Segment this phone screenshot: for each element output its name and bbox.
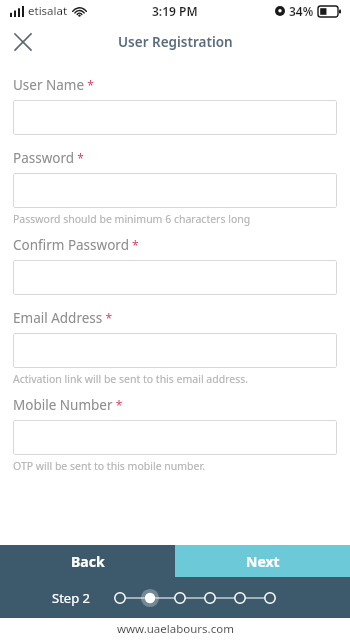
staticText: Back [71,552,105,571]
staticText: Password * [13,149,84,167]
button[interactable] [13,420,337,455]
staticText: 3:19 PM [152,3,198,19]
button[interactable]: Back [0,545,175,577]
staticText: www.uaelabours.com [117,621,234,637]
staticText: Activation link will be sent to this ema… [13,372,249,386]
staticText: Step 2 [52,589,90,607]
button[interactable] [13,333,337,368]
button[interactable] [13,100,337,135]
button[interactable]: Close [6,25,40,59]
staticText: 34% [289,3,314,19]
staticText: User Name * [13,76,94,94]
staticText: etisalat [28,3,68,19]
staticText: Email Address * [13,309,112,327]
staticText: Next [246,552,280,571]
button[interactable] [13,173,337,208]
staticText: OTP will be sent to this mobile number. [13,459,205,473]
staticText: Mobile Number * [13,396,123,414]
staticText: User Registration [118,33,233,51]
staticText: Confirm Password * [13,236,139,254]
button[interactable] [13,260,337,295]
staticText: Password should be minimum 6 characters … [13,212,251,226]
button[interactable]: Next [175,545,350,577]
